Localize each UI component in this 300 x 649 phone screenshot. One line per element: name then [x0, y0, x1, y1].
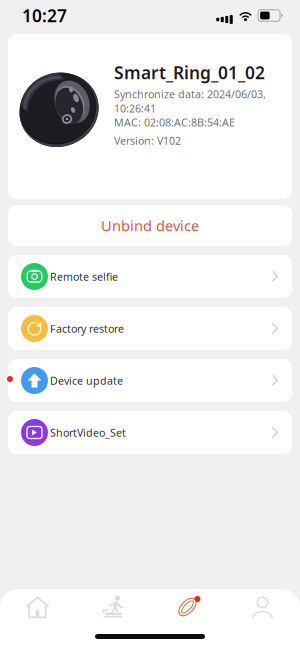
staticText: 10:27 [22, 4, 67, 27]
button[interactable]: Activity [75, 595, 150, 619]
button[interactable]: Device update [8, 359, 292, 402]
staticText: Synchronize data: 2024/06/03, [114, 87, 266, 101]
button[interactable]: ShortVideo_Set [8, 411, 292, 454]
staticText: MAC: 02:08:AC:8B:54:AE [114, 115, 235, 129]
staticText: Version: V102 [114, 133, 181, 148]
button[interactable]: Profile [225, 595, 300, 619]
staticText: Remote selfie [50, 269, 118, 284]
staticText: 10:26:41 [114, 101, 156, 115]
staticText: Factory restore [50, 321, 124, 336]
button[interactable]: Factory restore [8, 307, 292, 350]
button[interactable]: Unbind device [8, 205, 292, 246]
button[interactable]: Remote selfie [8, 255, 292, 298]
staticText: ShortVideo_Set [50, 425, 126, 440]
staticText: Smart_Ring_01_02 [114, 61, 265, 84]
button[interactable]: Device [150, 595, 225, 619]
staticText: Device update [50, 373, 123, 388]
button[interactable]: Home [0, 595, 75, 619]
staticText: Unbind device [101, 216, 199, 235]
